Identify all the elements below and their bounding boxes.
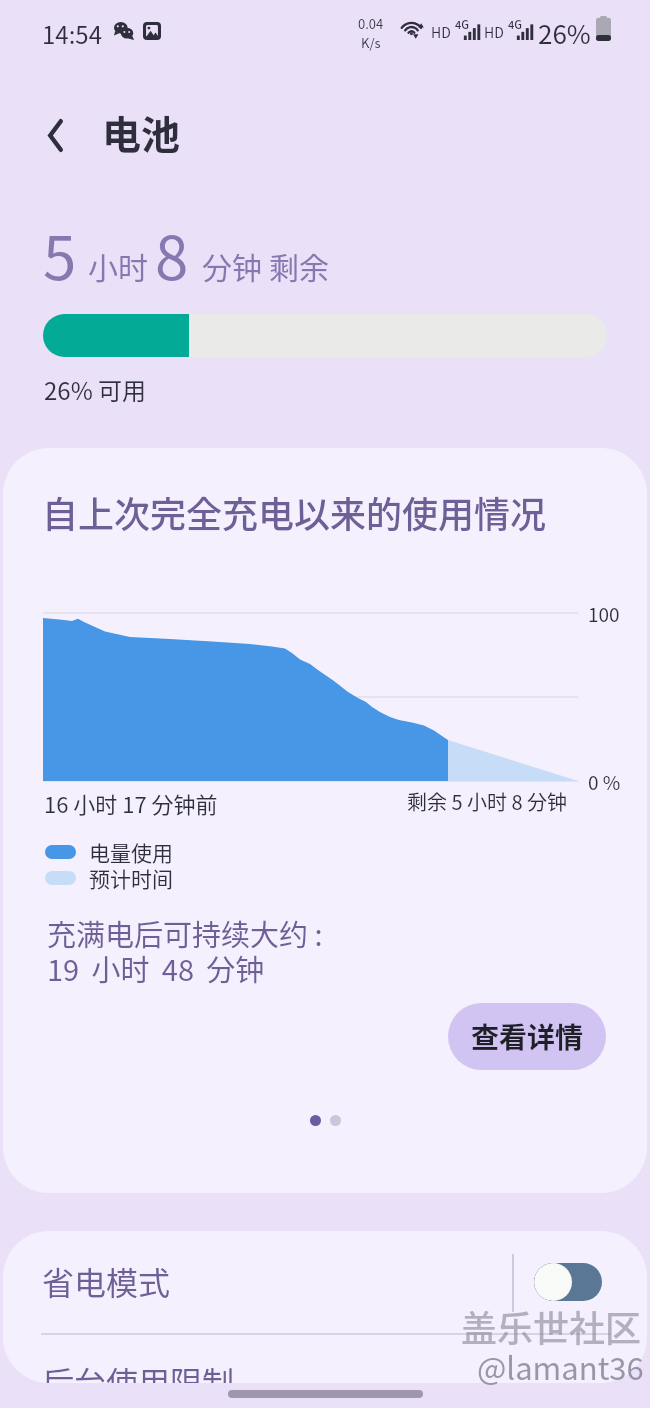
staticText: 省电模式	[42, 1258, 171, 1304]
staticText: 电池	[102, 104, 181, 160]
staticText: 预计时间	[89, 863, 173, 893]
staticText: 小时	[88, 244, 148, 287]
staticText: 26% 可用	[44, 372, 147, 407]
staticText: K/s	[361, 33, 381, 52]
button[interactable]: 查看详情	[448, 1003, 606, 1070]
staticText: 充满电后可持续大约 :	[47, 912, 323, 954]
staticText: 5	[43, 210, 77, 297]
button[interactable]	[3, 1335, 647, 1383]
staticText: HD	[484, 22, 504, 42]
staticText: 19 小时 48 分钟	[47, 947, 265, 989]
staticText: 0 %	[588, 768, 621, 796]
staticText: HD	[431, 22, 451, 42]
staticText: 电量使用	[89, 837, 173, 867]
button[interactable]: Power saving mode toggle	[534, 1263, 602, 1301]
staticText: 后台使用限制	[42, 1358, 235, 1383]
staticText: 4G	[455, 16, 469, 32]
staticText: 4G	[508, 16, 522, 32]
staticText: 8	[155, 210, 189, 297]
staticText: 剩余 5 小时 8 分钟	[407, 787, 568, 816]
staticText: 100	[588, 600, 620, 628]
staticText: 16 小时 17 分钟前	[44, 787, 218, 819]
button[interactable]	[3, 1231, 647, 1333]
staticText: 0.04	[358, 14, 384, 33]
staticText: 剩余	[269, 244, 329, 287]
staticText: 26%	[538, 14, 591, 52]
button[interactable]: Back	[26, 106, 84, 164]
staticText: 自上次完全充电以来的使用情况	[42, 486, 547, 538]
staticText: 分钟	[202, 244, 262, 287]
staticText: @lamant36	[477, 1344, 644, 1389]
staticText: 查看详情	[471, 1016, 584, 1057]
staticText: 盖乐世社区	[461, 1300, 642, 1352]
staticText: 14:54	[42, 16, 102, 51]
